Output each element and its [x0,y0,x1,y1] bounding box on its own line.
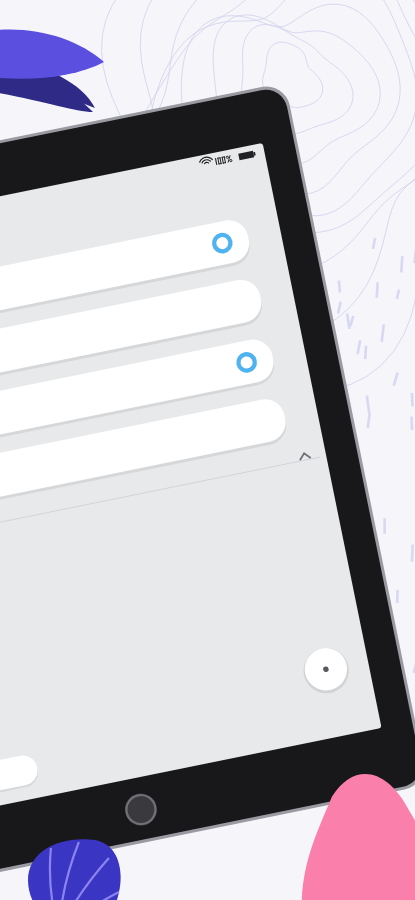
button[interactable]: Tablet app preview [0,0,415,900]
